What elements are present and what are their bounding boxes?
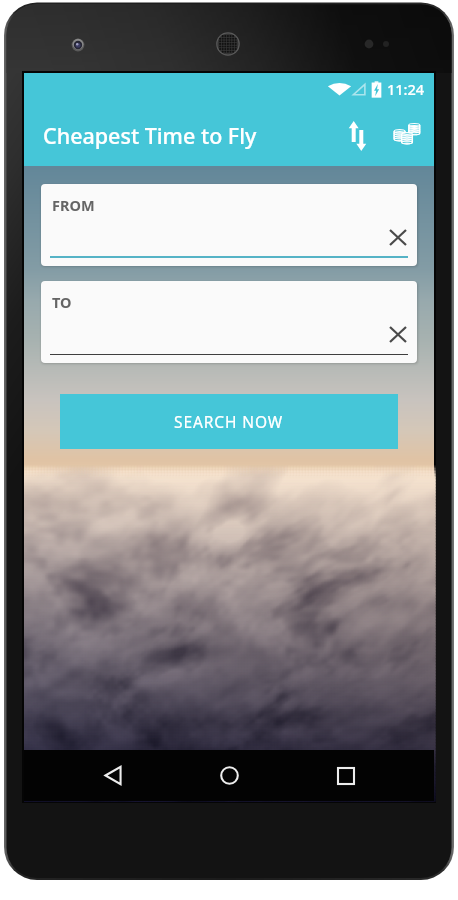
button[interactable]: Clear: [383, 222, 413, 252]
staticText: 11:24: [387, 79, 425, 99]
button[interactable]: Clear: [383, 319, 413, 349]
button[interactable]: SEARCH NOW: [60, 394, 398, 449]
button[interactable]: FROM: [41, 184, 417, 266]
button[interactable]: TO: [41, 281, 417, 363]
button[interactable]: Currency: [380, 108, 434, 164]
button[interactable]: Home: [201, 750, 257, 801]
staticText: FROM: [52, 195, 95, 215]
staticText: SEARCH NOW: [174, 411, 284, 432]
button[interactable]: Back: [85, 750, 141, 801]
button[interactable]: Swap origin and destination: [334, 108, 380, 164]
staticText: TO: [52, 292, 72, 312]
button[interactable]: Recent apps: [318, 750, 374, 801]
staticText: Cheapest Time to Fly: [43, 121, 257, 150]
